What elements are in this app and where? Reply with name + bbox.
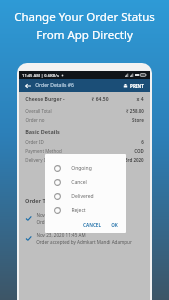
staticText: OK: [111, 222, 118, 228]
staticText: Delivery Date: [25, 157, 54, 163]
staticText: Cancel: [71, 179, 87, 186]
button[interactable]: Cancel: [45, 175, 126, 189]
staticText: 23rd 2020: [122, 157, 144, 163]
button[interactable]: Ongoing: [45, 161, 126, 175]
staticText: Order Details #6: [35, 82, 74, 89]
staticText: x 4: [136, 96, 144, 103]
staticText: PRINT: [130, 83, 144, 89]
staticText: Basic Details: [25, 128, 60, 135]
staticText: Order accepted by Admkart Mandi Adampur: [36, 239, 132, 245]
staticText: Order Tracking: [25, 197, 66, 204]
staticText: Nov 23, 2020 11:45 AM: [36, 232, 86, 238]
button[interactable]: Reject: [45, 203, 126, 217]
staticText: Change Your Order Status: [14, 9, 155, 25]
staticText: From App Directly: [36, 27, 133, 43]
button[interactable]: Delivered: [45, 189, 126, 203]
button[interactable]: OK: [109, 220, 120, 230]
staticText: Delivered: [71, 193, 94, 200]
staticText: Order Created.: [36, 219, 69, 225]
staticText: Payment Method: [25, 148, 62, 154]
staticText: COD: [134, 148, 144, 154]
staticText: Order no: [25, 117, 45, 123]
button[interactable]: PRINT: [121, 81, 146, 91]
staticText: ₹ 64.50: [91, 96, 109, 103]
staticText: Overall Total: [25, 108, 52, 114]
button[interactable]: CANCEL: [81, 220, 103, 230]
staticText: 11:45 AM | 0.6KB/s: [22, 73, 59, 78]
staticText: Reject: [71, 207, 86, 214]
staticText: Cheese Burger -: [25, 96, 65, 103]
staticText: CANCEL: [83, 222, 101, 228]
staticText: ₹ 258.00: [126, 108, 144, 114]
staticText: Nov 23, 2020 11:44 AM: [36, 212, 86, 218]
staticText: Order ID: [25, 139, 44, 145]
staticText: Store: [132, 117, 144, 123]
button[interactable]: Back: [23, 81, 32, 90]
staticText: 6: [141, 139, 144, 145]
staticText: Ongoing: [71, 165, 92, 172]
